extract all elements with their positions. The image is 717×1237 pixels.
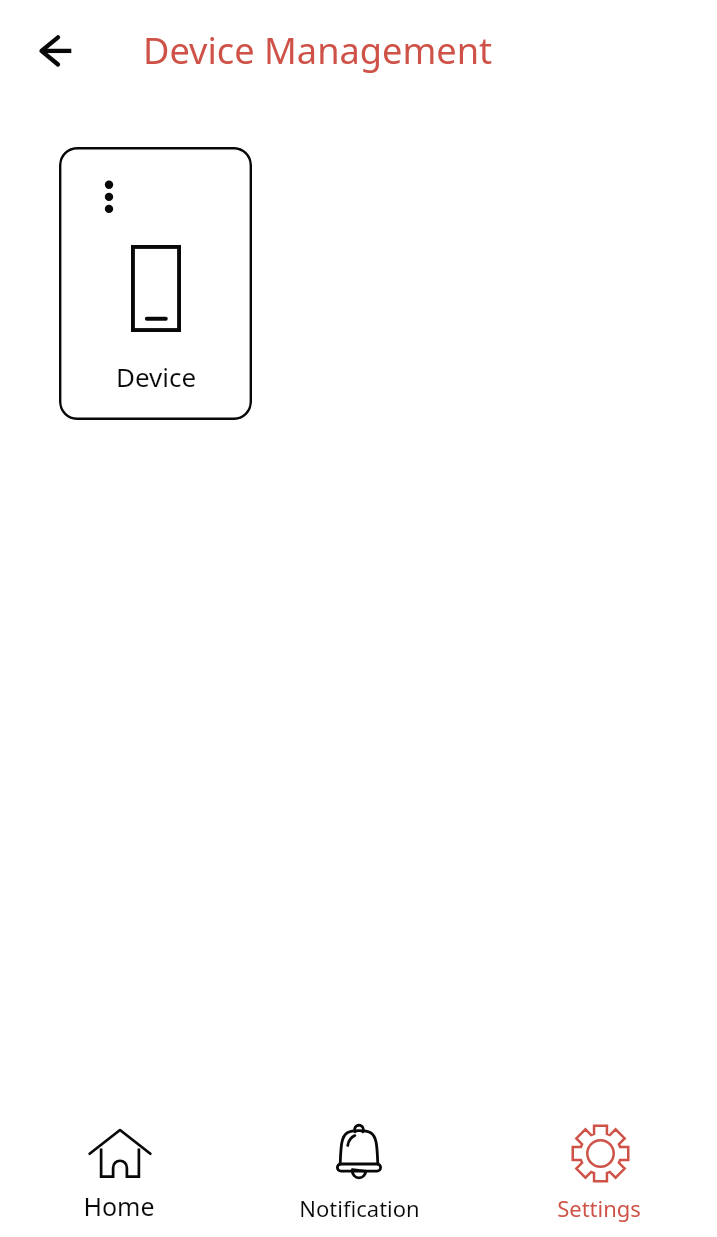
staticText: Notification [299, 1193, 420, 1223]
button[interactable]: Settings [478, 1108, 717, 1237]
staticText: Settings [557, 1193, 641, 1223]
other: Device icon [131, 245, 181, 332]
button[interactable]: Home [0, 1108, 239, 1237]
button[interactable]: Notification [239, 1108, 478, 1237]
button[interactable]: More options [91, 167, 127, 226]
button[interactable]: More options [59, 147, 252, 420]
staticText: Home [83, 1189, 155, 1223]
staticText: Device [116, 359, 197, 394]
button[interactable]: Back [27, 22, 83, 78]
staticText: Device Management [143, 25, 493, 74]
